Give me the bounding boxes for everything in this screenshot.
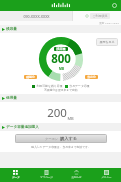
button[interactable]: 当月分 bbox=[85, 75, 98, 79]
button[interactable]: マイページ bbox=[31, 168, 61, 182]
staticText: マイページ bbox=[40, 176, 53, 179]
staticText: 200 bbox=[47, 105, 67, 121]
staticText: 800 bbox=[51, 51, 71, 67]
staticText: 残容量 bbox=[6, 27, 17, 32]
staticText: メニュー bbox=[101, 176, 112, 179]
staticText: ご利用状況 bbox=[92, 14, 108, 18]
staticText: MB bbox=[67, 116, 74, 121]
staticText: 当月分 bbox=[87, 75, 96, 79]
button[interactable]: 090-XXXX-XXXX bbox=[0, 11, 72, 21]
staticText: 利用可能な残り容量 bbox=[36, 84, 63, 88]
button[interactable]: 繰越分 bbox=[24, 75, 37, 79]
button[interactable]: クーポン bbox=[15, 134, 107, 143]
staticText: 090-XXXX-XXXX bbox=[23, 14, 50, 19]
staticText: 繰越分 bbox=[26, 75, 35, 79]
staticText: 履歴を見る bbox=[99, 40, 115, 44]
button[interactable]: メニュー bbox=[91, 168, 121, 182]
staticText: データ bbox=[12, 176, 20, 179]
button[interactable]: お知らせ bbox=[61, 168, 91, 182]
staticText: MB bbox=[59, 67, 64, 71]
button[interactable]: ご利用状況 bbox=[73, 11, 121, 21]
staticText: 更新 12/31 12:34 bbox=[99, 21, 119, 24]
button[interactable]: Search bbox=[110, 1, 119, 10]
staticText: 当月データ容量 bbox=[69, 84, 90, 88]
staticText: 使用量 bbox=[6, 96, 17, 101]
staticText: データ容量追加購入 bbox=[6, 125, 39, 130]
button[interactable]: Logo bbox=[49, 2, 73, 9]
staticText: クーポン bbox=[45, 137, 58, 141]
staticText: 残容量 bbox=[56, 47, 66, 51]
staticText: 購入したデータ容量は、当月末まで有効です。 bbox=[31, 145, 91, 149]
staticText: 購入する bbox=[60, 136, 77, 141]
staticText: お知らせ bbox=[71, 176, 82, 179]
button[interactable]: 履歴を見る bbox=[96, 38, 118, 46]
button[interactable]: データ bbox=[0, 168, 31, 182]
staticText: ※繰越分は翌月末まで有効 bbox=[44, 88, 78, 92]
